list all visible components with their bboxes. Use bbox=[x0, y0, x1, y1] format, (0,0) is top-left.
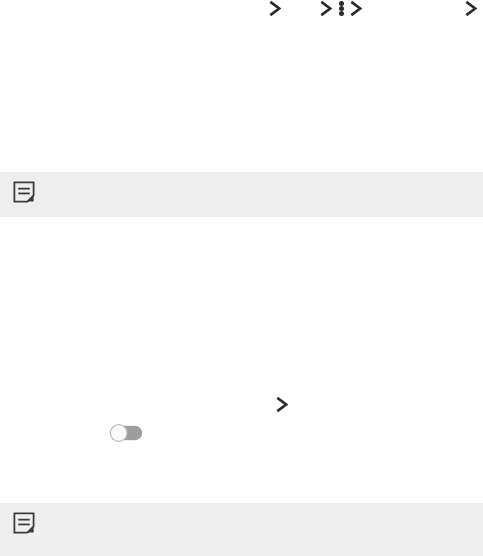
button[interactable] bbox=[0, 172, 483, 217]
button[interactable]: Toggle setting bbox=[109, 424, 143, 442]
button[interactable]: Next bbox=[319, 1, 332, 16]
button[interactable]: Next bbox=[268, 1, 281, 16]
button[interactable]: Next bbox=[275, 397, 288, 412]
button[interactable]: More options bbox=[339, 1, 344, 16]
button[interactable] bbox=[0, 503, 483, 556]
button[interactable]: Next bbox=[464, 1, 477, 16]
button[interactable]: Next bbox=[349, 1, 362, 16]
